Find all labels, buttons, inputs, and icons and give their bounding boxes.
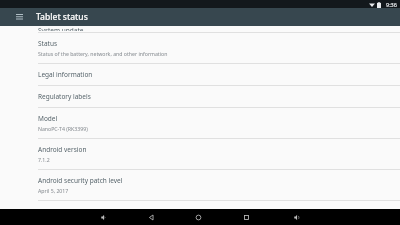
button[interactable]: Open navigation menu bbox=[13, 11, 25, 23]
staticText: Android version bbox=[38, 145, 87, 154]
button[interactable]: Android security patch level bbox=[0, 170, 400, 200]
button[interactable]: Recent apps bbox=[238, 209, 254, 225]
staticText: 7.1.2 bbox=[38, 156, 50, 163]
staticText: Tablet status bbox=[36, 11, 88, 23]
button[interactable]: Status bbox=[0, 33, 400, 63]
staticText: Status bbox=[38, 39, 58, 48]
button[interactable]: Volume down bbox=[95, 209, 111, 225]
staticText: Legal information bbox=[38, 70, 93, 79]
button[interactable]: Home bbox=[190, 209, 206, 225]
staticText: April 5, 2017 bbox=[38, 187, 69, 194]
button[interactable]: Regulatory labels bbox=[0, 86, 400, 107]
button[interactable]: Volume up bbox=[288, 209, 304, 225]
staticText: System update bbox=[38, 26, 84, 31]
button[interactable]: Android version bbox=[0, 139, 400, 169]
staticText: Model bbox=[38, 114, 58, 123]
button[interactable]: Legal information bbox=[0, 64, 400, 85]
staticText: Status of the battery, network, and othe… bbox=[38, 50, 168, 57]
staticText: NanoPC-T4 (RK3399) bbox=[38, 125, 88, 132]
button[interactable]: Back bbox=[143, 209, 159, 225]
staticText: Android security patch level bbox=[38, 176, 123, 185]
staticText: 9:36 bbox=[386, 1, 397, 8]
button[interactable]: Model bbox=[0, 108, 400, 138]
button[interactable]: System update bbox=[0, 26, 400, 32]
staticText: Regulatory labels bbox=[38, 92, 91, 101]
